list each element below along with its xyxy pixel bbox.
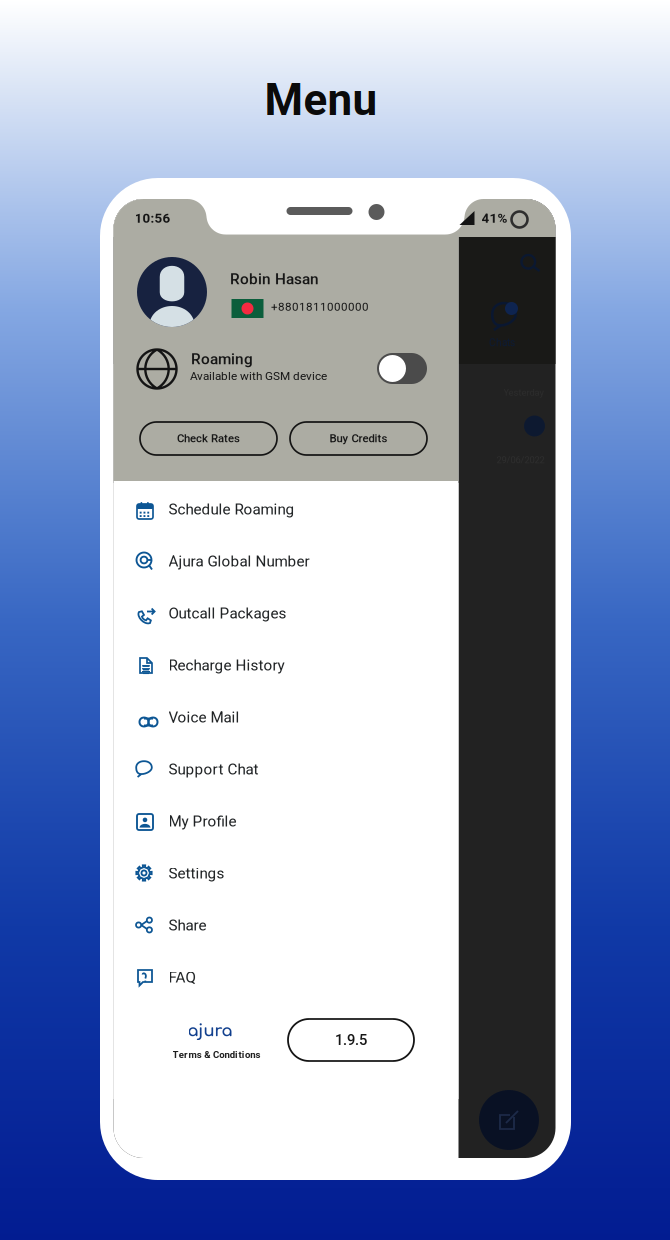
button[interactable]: Check Rates <box>140 422 277 455</box>
button[interactable]: Voice Mail <box>113 691 458 743</box>
staticText: +8801811000000 <box>271 300 369 314</box>
button[interactable]: My Profile <box>113 795 458 847</box>
button[interactable]: Recharge History <box>113 639 458 691</box>
staticText: Share <box>168 916 206 934</box>
button[interactable]: 1.9.5 <box>288 1019 414 1061</box>
button[interactable]: Share <box>113 899 458 951</box>
button[interactable]: Schedule Roaming <box>113 483 458 535</box>
staticText: Available with GSM device <box>190 369 327 383</box>
staticText: 41% <box>481 210 507 226</box>
button[interactable]: Roaming toggle <box>377 353 427 384</box>
staticText: Chats <box>489 337 515 349</box>
staticText: Buy Credits <box>329 432 387 445</box>
button[interactable]: Outcall Packages <box>113 587 458 639</box>
staticText: Outcall Packages <box>168 604 286 622</box>
staticText: 10:56 <box>134 210 170 226</box>
staticText: Recharge History <box>168 656 284 674</box>
staticText: Support Chat <box>168 760 258 778</box>
staticText: Menu <box>264 74 377 126</box>
button[interactable]: FAQ <box>113 951 458 1003</box>
button[interactable]: Ajura Global Number <box>113 535 458 587</box>
staticText: My Profile <box>168 812 236 830</box>
button[interactable]: Support Chat <box>113 743 458 795</box>
staticText: 1.9.5 <box>335 1031 367 1049</box>
button[interactable]: Buy Credits <box>290 422 427 455</box>
staticText: Terms & Conditions <box>172 1049 261 1060</box>
staticText: Schedule Roaming <box>168 500 294 518</box>
staticText: Check Rates <box>177 432 240 445</box>
staticText: Voice Mail <box>168 708 239 726</box>
staticText: Roaming <box>191 350 253 368</box>
button[interactable]: Settings <box>113 847 458 899</box>
staticText: FAQ <box>168 968 195 986</box>
staticText: Robin Hasan <box>230 270 319 288</box>
staticText: Ajura Global Number <box>168 552 309 570</box>
staticText: 29/06/2022 <box>496 454 544 465</box>
button[interactable]: ajura <box>172 1020 282 1068</box>
staticText: ajura <box>187 1022 232 1040</box>
staticText: Settings <box>168 864 224 882</box>
